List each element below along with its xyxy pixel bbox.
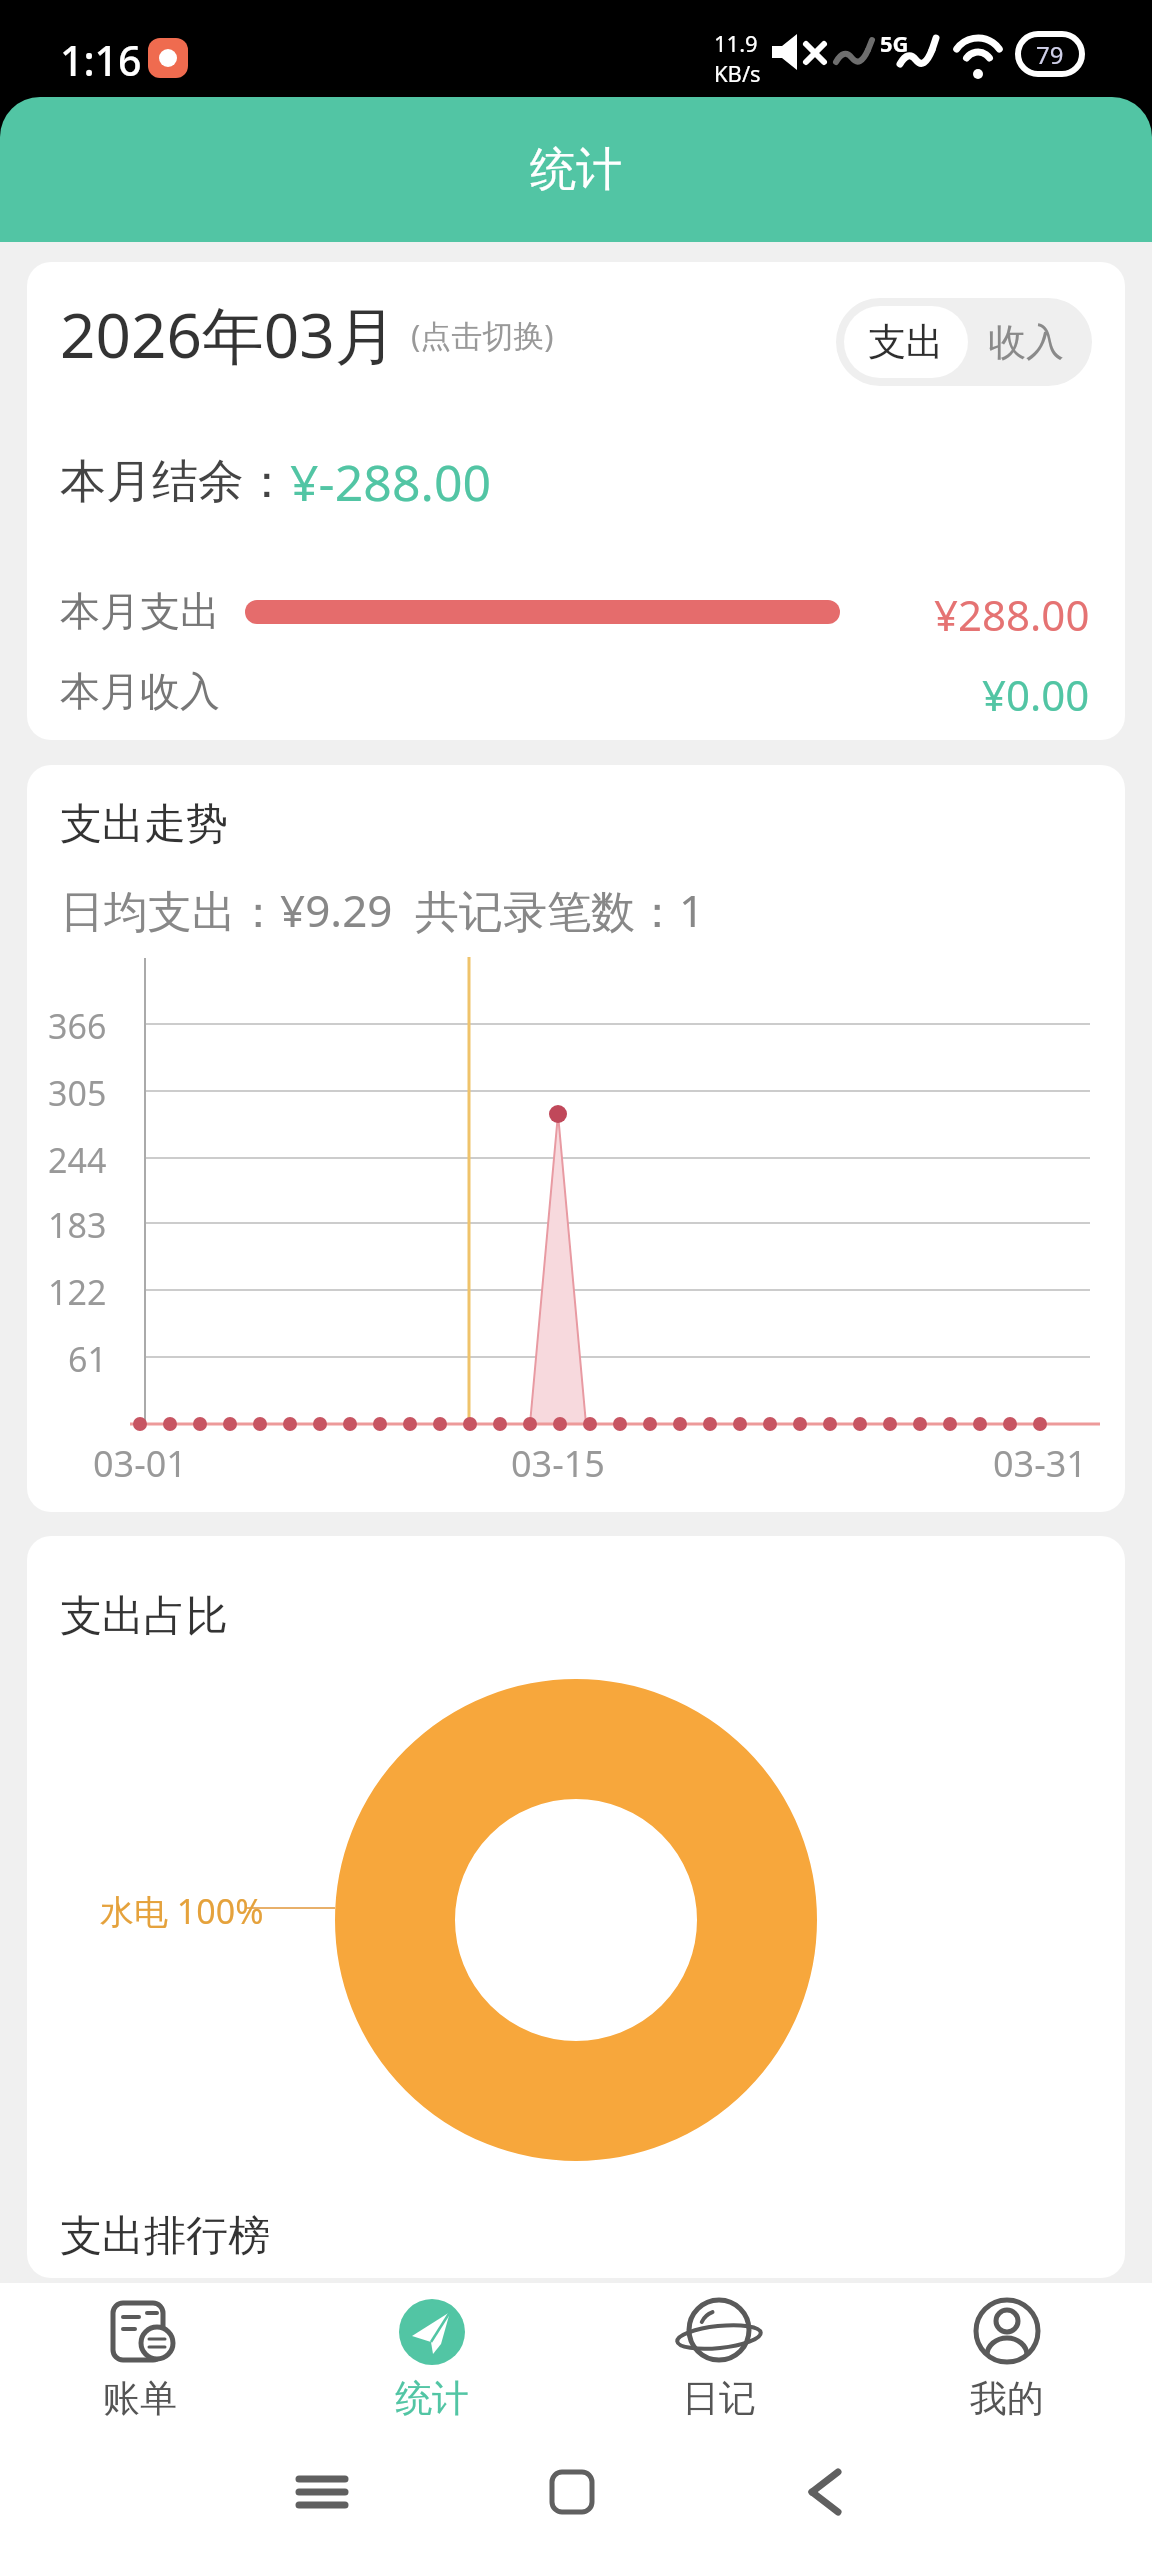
staticText: 水电 100%	[100, 1888, 264, 1934]
staticText: 日均支出：¥9.29	[60, 880, 393, 940]
button[interactable]: 支出	[844, 306, 968, 378]
staticText: 183	[48, 1202, 107, 1248]
button[interactable]: 日记	[639, 2299, 799, 2422]
staticText: 5G	[880, 28, 909, 58]
staticText: 支出排行榜	[60, 2210, 270, 2263]
staticText: 统计	[530, 141, 622, 199]
staticText: ¥0.00	[982, 666, 1090, 723]
staticText: 统计	[395, 2375, 469, 2422]
staticText: 122	[48, 1269, 107, 1315]
staticText: 我的	[970, 2375, 1044, 2422]
staticText: 366	[48, 1003, 107, 1049]
staticText: KB/s	[714, 58, 761, 88]
staticText: 账单	[103, 2375, 177, 2422]
staticText: 79	[1036, 38, 1064, 71]
staticText: 本月收入	[60, 666, 220, 716]
button[interactable]: 统计	[352, 2299, 512, 2422]
staticText: 244	[48, 1137, 107, 1183]
staticText: 305	[48, 1070, 107, 1116]
staticText: 日记	[682, 2375, 756, 2422]
staticText: 本月支出	[60, 586, 220, 636]
staticText: ¥288.00	[934, 586, 1090, 643]
staticText: 支出占比	[60, 1590, 228, 1643]
button[interactable]: 我的	[927, 2299, 1087, 2422]
staticText: 03-31	[993, 1439, 1087, 1488]
staticText: 本月结余：	[60, 453, 290, 511]
staticText: 支出走势	[60, 798, 228, 851]
staticText: 61	[68, 1336, 107, 1382]
button[interactable]: 2026年03月	[60, 292, 397, 377]
staticText: 11.9	[714, 28, 758, 58]
staticText: 03-01	[93, 1439, 187, 1488]
staticText: 收入	[988, 318, 1064, 366]
staticText: 支出	[868, 318, 944, 366]
staticText: 03-15	[511, 1439, 605, 1488]
staticText: 共记录笔数：1	[415, 880, 705, 940]
staticText: (点击切换)	[411, 314, 554, 356]
staticText: 1:16	[60, 32, 142, 88]
button[interactable]: 账单	[60, 2299, 220, 2422]
button[interactable]: 收入	[968, 306, 1084, 378]
staticText: ¥-288.00	[290, 448, 492, 516]
